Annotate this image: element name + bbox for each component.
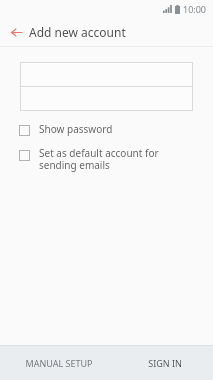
staticText: Set as default account for sending email… (39, 146, 159, 172)
staticText: Add new account (29, 24, 126, 40)
button[interactable]: Email address (20, 62, 193, 86)
staticText: SIGN IN (148, 357, 182, 369)
staticText: MANUAL SETUP (25, 357, 93, 369)
staticText: Show password (39, 122, 113, 136)
staticText: 10:00 (183, 3, 207, 15)
button[interactable]: Back (6, 22, 26, 42)
button[interactable]: SIGN IN (117, 346, 213, 380)
button[interactable]: Set as default account for sending email… (0, 144, 213, 174)
button[interactable]: MANUAL SETUP (0, 346, 117, 380)
button[interactable]: Show password (0, 120, 213, 138)
button[interactable]: Password (20, 87, 193, 111)
